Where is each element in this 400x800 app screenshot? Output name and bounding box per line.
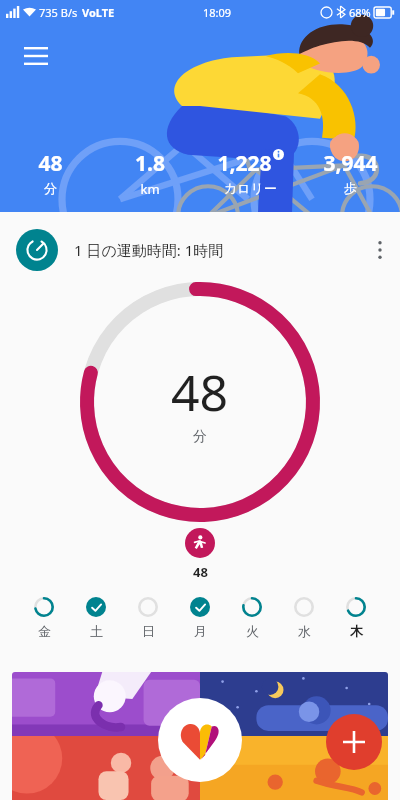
- staticText: 48: [38, 149, 63, 178]
- button[interactable]: 木: [338, 597, 374, 639]
- button[interactable]: 月: [182, 597, 218, 639]
- staticText: 735 B/s: [39, 5, 78, 20]
- staticText: 1.8: [135, 149, 165, 178]
- staticText: 木: [350, 623, 363, 639]
- button[interactable]: 1 日の運動時間: 1時間: [0, 224, 400, 276]
- staticText: 48: [193, 563, 208, 581]
- button[interactable]: 48: [0, 528, 400, 581]
- button[interactable]: 3,944: [300, 149, 400, 196]
- staticText: カロリー: [224, 180, 277, 196]
- staticText: 歩: [344, 180, 357, 196]
- button[interactable]: 金: [26, 597, 62, 639]
- staticText: km: [140, 180, 160, 198]
- staticText: 1,228: [217, 149, 272, 178]
- staticText: 1 日の運動時間: 1時間: [74, 240, 224, 260]
- button[interactable]: 1.8: [100, 149, 200, 198]
- staticText: VoLTE: [82, 5, 115, 20]
- button[interactable]: [12, 672, 388, 800]
- button[interactable]: 日: [130, 597, 166, 639]
- staticText: 水: [298, 623, 311, 639]
- staticText: 48: [171, 358, 229, 426]
- staticText: 火: [246, 623, 259, 639]
- button[interactable]: 水: [286, 597, 322, 639]
- button[interactable]: More options: [360, 230, 400, 270]
- staticText: 日: [142, 623, 155, 639]
- button[interactable]: Add: [326, 714, 382, 770]
- button[interactable]: 土: [78, 597, 114, 639]
- button[interactable]: 1,228: [200, 149, 300, 196]
- staticText: 金: [38, 623, 51, 639]
- staticText: 分: [44, 180, 57, 196]
- button[interactable]: 火: [234, 597, 270, 639]
- button[interactable]: 48: [0, 149, 100, 196]
- button[interactable]: Menu: [16, 36, 56, 76]
- staticText: 月: [194, 623, 207, 639]
- staticText: 分: [193, 428, 207, 446]
- staticText: 土: [90, 623, 103, 639]
- button[interactable]: Google Fit: [158, 698, 242, 782]
- staticText: 68%: [349, 5, 371, 20]
- staticText: 18:09: [203, 5, 232, 20]
- staticText: 3,944: [323, 149, 378, 178]
